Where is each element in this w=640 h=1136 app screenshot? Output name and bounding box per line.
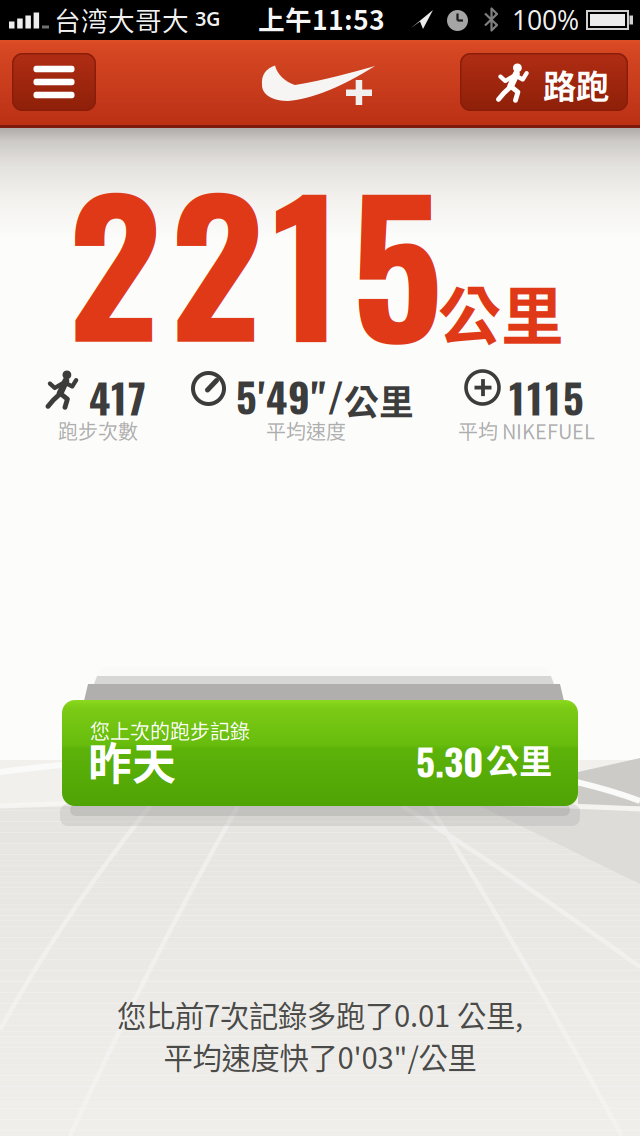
staticText: 路跑 (543, 60, 609, 108)
staticText: 昨天 (88, 729, 176, 793)
button[interactable]: 您上次的跑步記錄 (62, 700, 578, 806)
staticText: 您比前7次記錄多跑了0.01 公里, (117, 993, 523, 1035)
staticText: 1115 (509, 367, 584, 427)
staticText: 5'49"/ (236, 366, 344, 426)
staticText: 5.30 (416, 733, 484, 788)
staticText: 公里 (438, 266, 564, 357)
staticText: 平均速度快了0'03"/公里 (163, 1035, 476, 1077)
staticText: 100% (512, 2, 579, 37)
staticText: 平均速度 (266, 416, 346, 445)
staticText: 跑步次數 (58, 416, 138, 445)
staticText: 平均 NIKEFUEL (458, 416, 595, 445)
staticText: 3G (195, 5, 221, 32)
button[interactable]: Menu (12, 53, 96, 111)
staticText: 台湾大哥大 (54, 0, 189, 39)
staticText: 上午11:53 (258, 0, 385, 38)
staticText: 417 (89, 367, 146, 427)
staticText: 您上次的跑步記錄 (90, 716, 250, 745)
staticText: 公里 (344, 375, 414, 425)
staticText: 公里 (486, 735, 552, 783)
staticText: 2215 (68, 125, 443, 394)
button[interactable]: 路跑 (460, 53, 628, 111)
